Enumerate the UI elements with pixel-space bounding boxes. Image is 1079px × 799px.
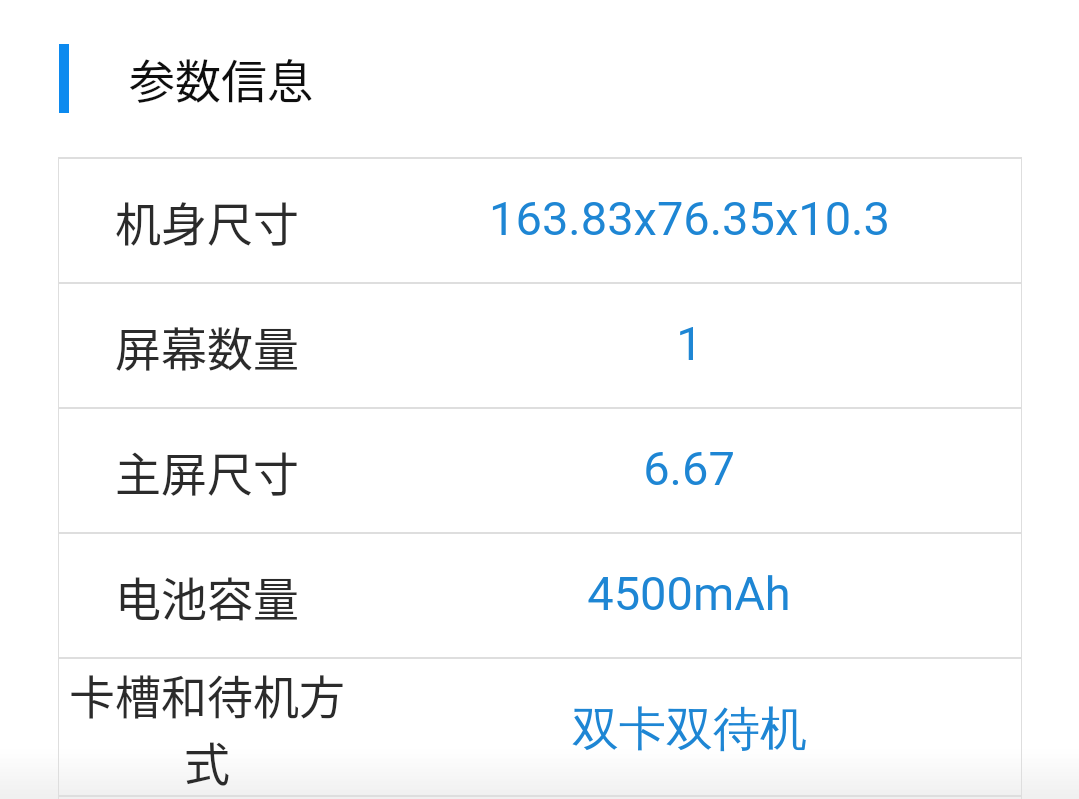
staticText: 参数信息 bbox=[129, 45, 313, 112]
button[interactable]: 电池容量 bbox=[58, 535, 1022, 656]
staticText: 屏幕数量 bbox=[115, 313, 299, 380]
staticText: 机身尺寸 bbox=[115, 188, 299, 255]
staticText: 163.83x76.35x10.3 bbox=[489, 191, 890, 246]
staticText: 电池容量 bbox=[115, 563, 299, 630]
staticText: 1 bbox=[676, 316, 703, 371]
staticText: 4500mAh bbox=[587, 566, 791, 621]
button[interactable]: 机身尺寸 bbox=[58, 160, 1022, 281]
button[interactable]: 屏幕数量 bbox=[58, 285, 1022, 406]
button[interactable]: 主屏尺寸 bbox=[58, 410, 1022, 531]
staticText: 卡槽和待机方式 bbox=[58, 661, 356, 795]
staticText: 6.67 bbox=[643, 441, 735, 496]
staticText: 主屏尺寸 bbox=[115, 438, 299, 505]
staticText: 双卡双待机 bbox=[572, 700, 807, 759]
button[interactable]: 卡槽和待机方式 bbox=[58, 660, 1022, 794]
